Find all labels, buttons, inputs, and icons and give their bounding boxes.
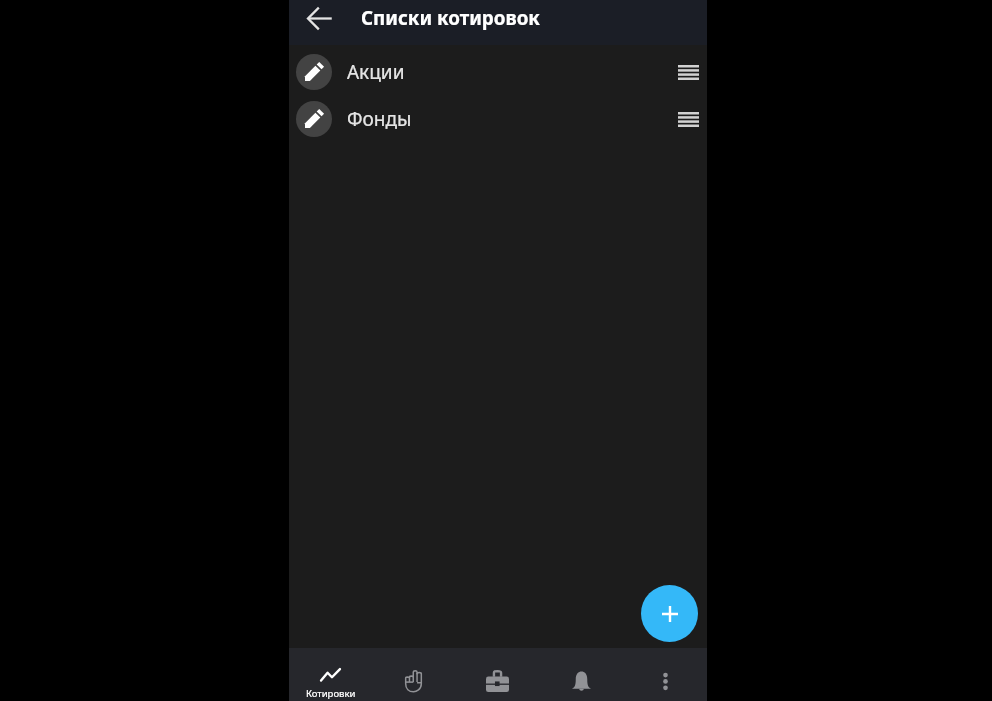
button[interactable]: Акции xyxy=(289,48,707,95)
staticText: Котировки xyxy=(306,687,356,700)
button[interactable]: Reorder xyxy=(672,51,704,93)
button[interactable]: Add list xyxy=(641,585,698,642)
staticText: Фонды xyxy=(347,106,412,132)
button[interactable]: Ещё xyxy=(623,648,707,701)
staticText: Списки котировок xyxy=(361,5,540,31)
button[interactable]: Back xyxy=(300,0,338,36)
button[interactable]: Сделки xyxy=(372,648,455,701)
staticText: Акции xyxy=(347,59,405,85)
button[interactable]: Уведомления xyxy=(539,648,623,701)
button[interactable]: Фонды xyxy=(289,95,707,142)
button[interactable]: Котировки xyxy=(289,648,372,701)
button[interactable]: Reorder xyxy=(672,98,704,140)
button[interactable]: Портфель xyxy=(455,648,539,701)
